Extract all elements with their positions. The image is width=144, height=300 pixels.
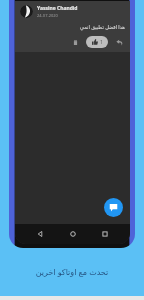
button[interactable]: Delete	[69, 36, 81, 48]
button[interactable]: Back	[32, 226, 48, 242]
button[interactable]: Reply	[113, 36, 125, 48]
staticText: تحدث مع اوتاكو اخرين	[0, 266, 144, 277]
staticText: 1	[100, 39, 103, 46]
button[interactable]: Yassine Chandid	[15, 1, 130, 52]
staticText: Yassine Chandid	[37, 5, 78, 12]
staticText: هذا افضل تطبيق انمي	[20, 24, 125, 31]
button[interactable]: 1	[86, 36, 108, 48]
button[interactable]: Recents	[97, 226, 113, 242]
button[interactable]: New message	[104, 198, 123, 217]
staticText: 24-07-2020	[37, 13, 58, 18]
button[interactable]: Home	[65, 226, 81, 242]
